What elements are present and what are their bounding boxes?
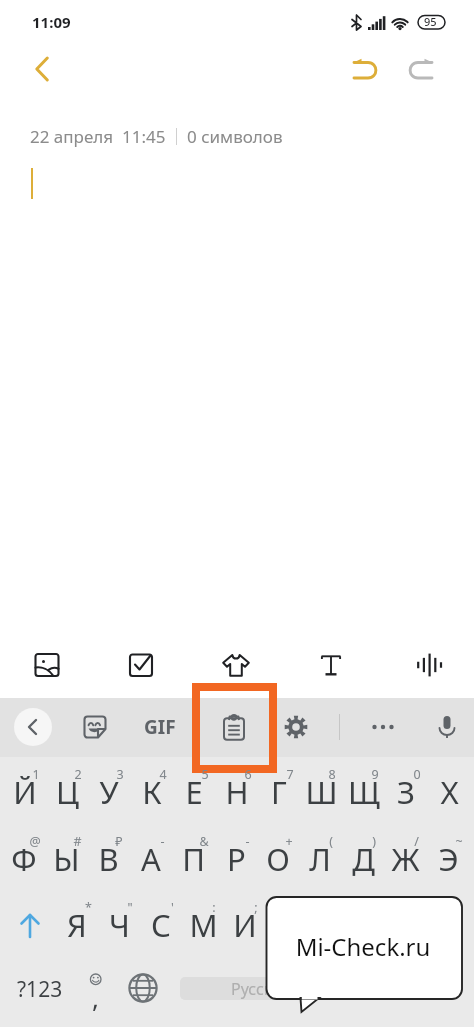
- staticText: И: [233, 904, 257, 946]
- staticText: С: [151, 904, 171, 946]
- staticText: З: [397, 771, 415, 813]
- button[interactable]: У: [88, 758, 130, 822]
- staticText: Н: [225, 771, 249, 813]
- staticText: А: [141, 838, 161, 880]
- button[interactable]: Checklist: [117, 641, 165, 689]
- button[interactable]: Ь: [308, 891, 350, 955]
- staticText: Ь: [320, 904, 339, 946]
- staticText: *: [85, 899, 92, 916]
- button[interactable]: П: [172, 825, 214, 889]
- button[interactable]: Н: [216, 758, 258, 822]
- staticText: У: [99, 771, 119, 813]
- button[interactable]: К: [131, 758, 173, 822]
- button[interactable]: Т: [266, 891, 308, 955]
- staticText: 1: [32, 766, 40, 783]
- staticText: Щ: [348, 771, 380, 813]
- button[interactable]: Й: [4, 758, 46, 822]
- button[interactable]: Русский: [180, 977, 343, 1000]
- staticText: Ч: [109, 904, 130, 946]
- staticText: К: [142, 771, 162, 813]
- button[interactable]: Voice recording: [402, 641, 450, 689]
- staticText: -: [160, 833, 165, 850]
- button[interactable]: Settings: [275, 707, 317, 747]
- staticText: П: [182, 838, 205, 880]
- staticText: /: [414, 833, 419, 850]
- button[interactable]: С: [140, 891, 182, 955]
- button[interactable]: В: [87, 825, 129, 889]
- button[interactable]: З: [385, 758, 427, 822]
- button[interactable]: Л: [299, 825, 341, 889]
- button[interactable]: Ы: [45, 825, 87, 889]
- button[interactable]: Б: [350, 891, 392, 955]
- button[interactable]: Я: [56, 891, 98, 955]
- button[interactable]: Insert image: [23, 641, 71, 689]
- staticText: М: [189, 904, 218, 946]
- button[interactable]: Close panel: [14, 708, 52, 746]
- button[interactable]: Г: [258, 758, 300, 822]
- staticText: ,: [92, 980, 99, 1015]
- staticText: ': [171, 899, 174, 916]
- staticText: (: [329, 833, 333, 850]
- button[interactable]: Е: [173, 758, 215, 822]
- button[interactable]: Ш: [300, 758, 342, 822]
- staticText: Г: [271, 771, 287, 813]
- button[interactable]: Ф: [3, 825, 45, 889]
- button[interactable]: Э: [427, 825, 469, 889]
- button[interactable]: Ц: [46, 758, 88, 822]
- button[interactable]: А: [130, 825, 172, 889]
- button[interactable]: Р: [215, 825, 257, 889]
- button[interactable]: М: [182, 891, 224, 955]
- staticText: 2: [74, 766, 82, 783]
- button[interactable]: Stickers: [74, 707, 116, 747]
- button[interactable]: Ж: [384, 825, 426, 889]
- button[interactable]: Redo: [398, 47, 442, 91]
- staticText: Русский: [231, 978, 293, 1000]
- staticText: Ц: [56, 771, 79, 813]
- button[interactable]: Clipboard: [213, 707, 255, 747]
- staticText: ~: [455, 833, 463, 850]
- button[interactable]: Shift: [9, 901, 50, 949]
- staticText: ?123: [17, 975, 63, 1004]
- button[interactable]: Ю: [392, 891, 434, 955]
- button[interactable]: Style: [212, 641, 260, 689]
- button[interactable]: More options: [362, 707, 404, 747]
- button[interactable]: Back: [20, 47, 64, 91]
- staticText: Ш: [305, 771, 338, 813]
- staticText: 6: [244, 766, 252, 783]
- button[interactable]: Voice input: [426, 707, 468, 747]
- button[interactable]: Comma and emoji: [76, 966, 116, 1010]
- button[interactable]: Text format: [307, 641, 355, 689]
- staticText: &: [199, 833, 209, 850]
- button[interactable]: Change keyboard language: [123, 966, 163, 1010]
- staticText: @: [29, 833, 41, 850]
- button[interactable]: GIF: [138, 707, 182, 747]
- staticText: Ю: [398, 904, 429, 946]
- staticText: 8: [328, 766, 336, 783]
- staticText: 3: [116, 766, 124, 783]
- staticText: 9: [371, 766, 379, 783]
- button[interactable]: ?123: [14, 967, 66, 1011]
- staticText: Я: [67, 904, 87, 946]
- button[interactable]: О: [257, 825, 299, 889]
- staticText: 11:09: [32, 12, 71, 32]
- staticText: Р: [227, 838, 246, 880]
- button[interactable]: Undo: [344, 47, 388, 91]
- staticText: 4: [159, 766, 167, 783]
- staticText: Ф: [11, 838, 37, 880]
- button[interactable]: Х: [428, 758, 470, 822]
- staticText: 7: [286, 766, 294, 783]
- staticText: О: [266, 838, 290, 880]
- staticText: Ж: [391, 838, 420, 880]
- staticText: 0: [413, 766, 421, 783]
- staticText: Х: [440, 771, 459, 813]
- button[interactable]: Щ: [343, 758, 385, 822]
- button[interactable]: Д: [342, 825, 384, 889]
- staticText: Д: [352, 838, 375, 880]
- button[interactable]: И: [224, 891, 266, 955]
- staticText: ₽: [115, 833, 123, 850]
- button[interactable]: Ч: [98, 891, 140, 955]
- staticText: :: [212, 899, 216, 916]
